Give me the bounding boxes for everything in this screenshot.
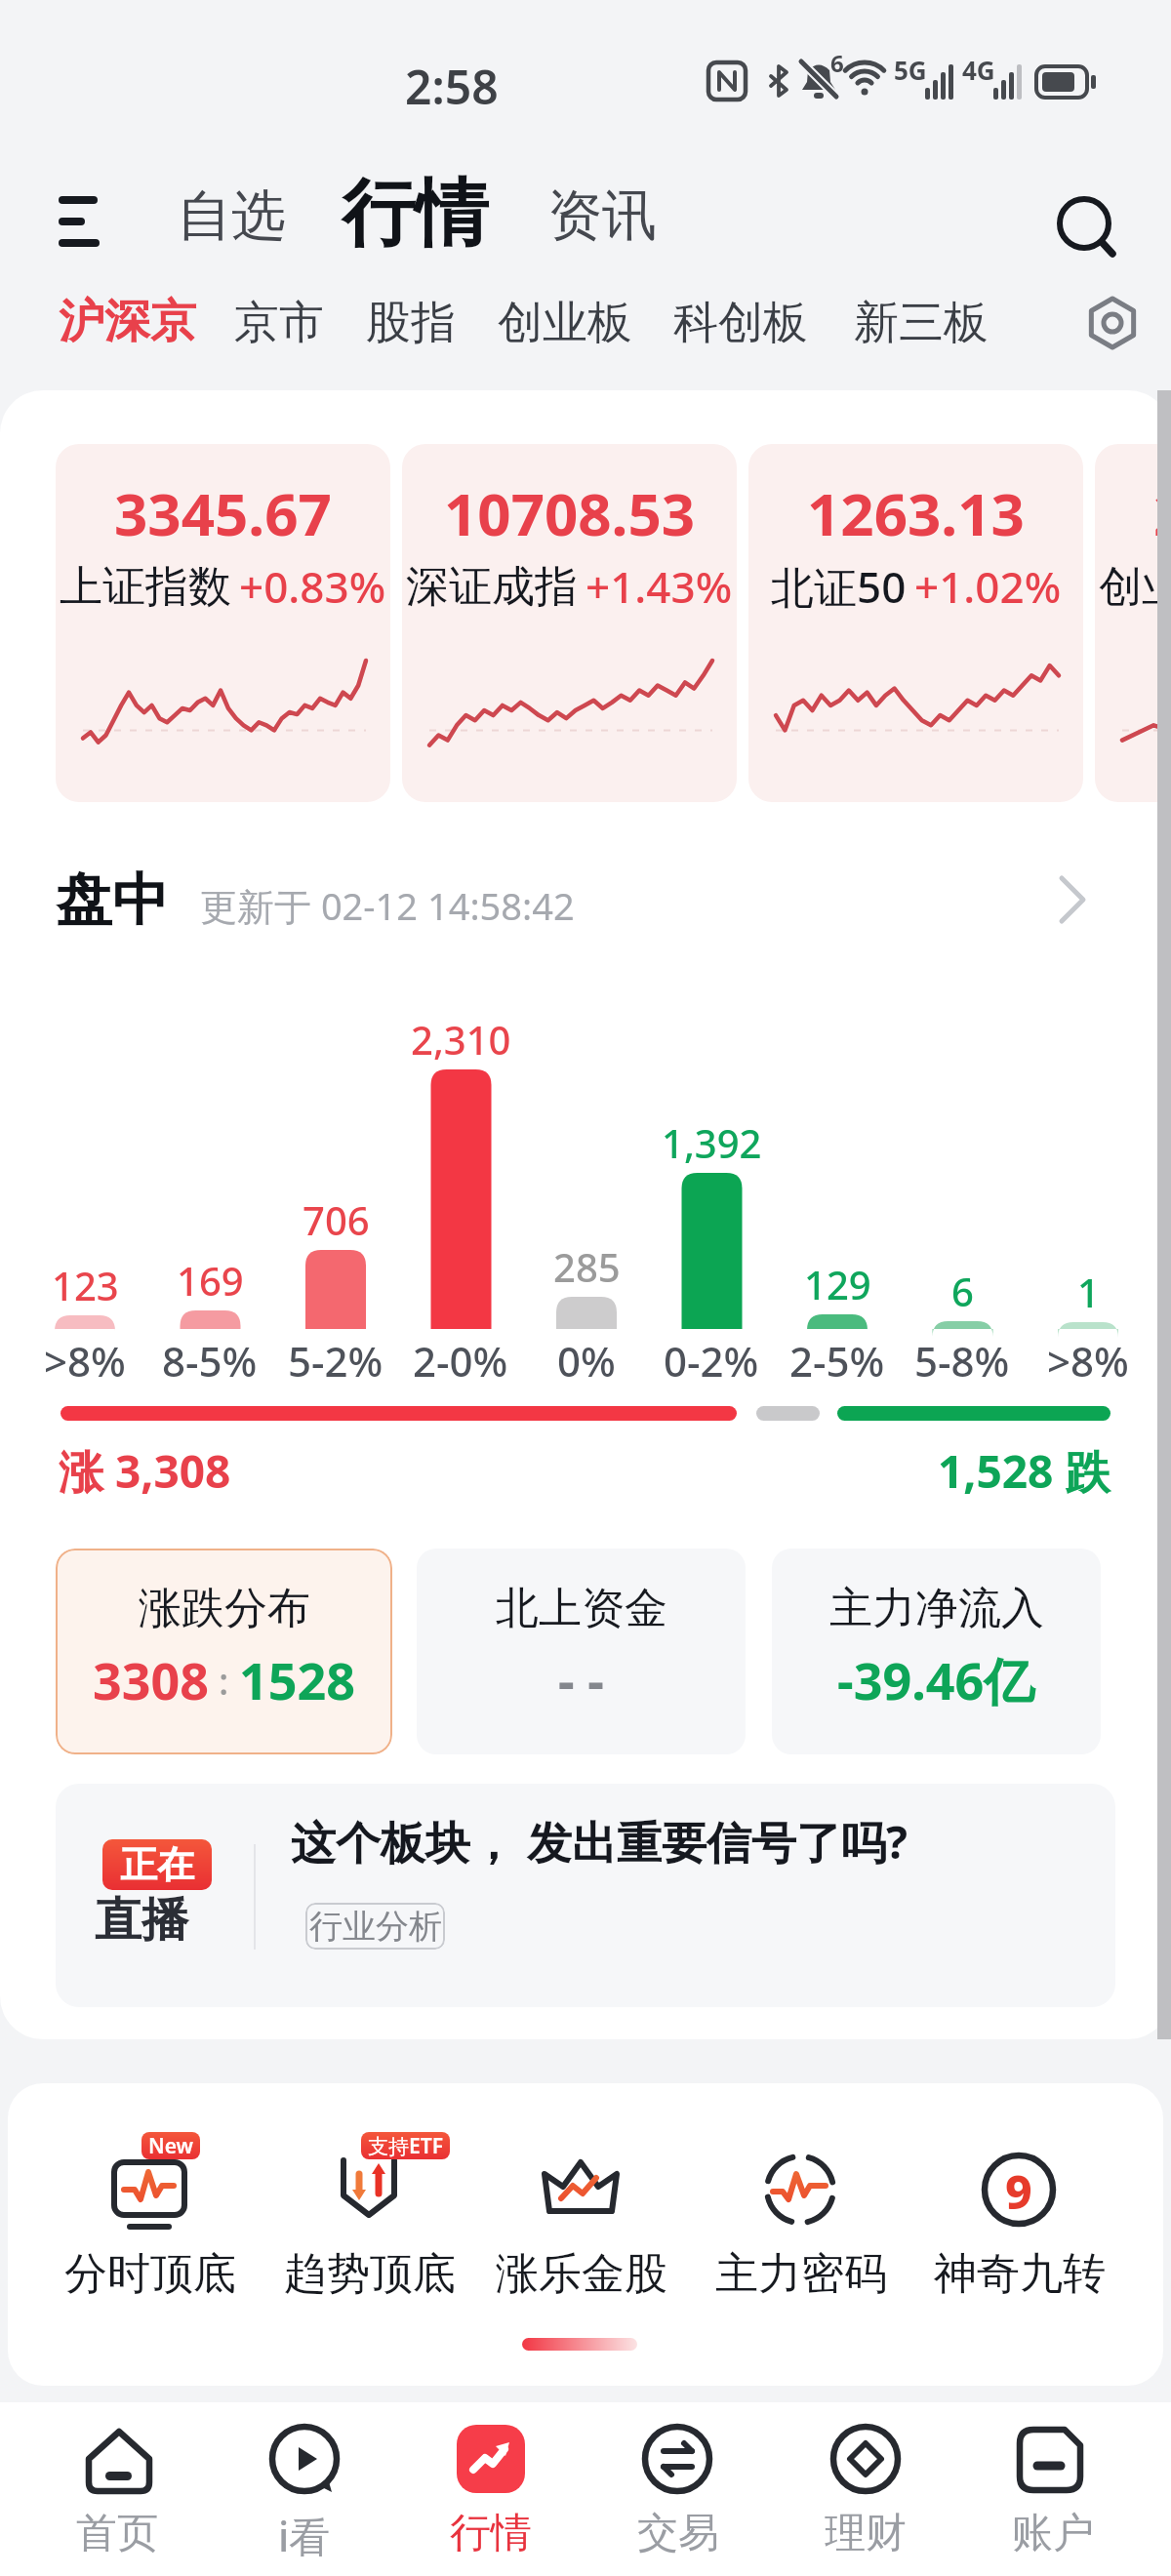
staticText: 深证成指 bbox=[406, 560, 578, 614]
staticText: 3308 bbox=[93, 1645, 209, 1714]
button[interactable]: 正在 bbox=[56, 1784, 1115, 2007]
staticText: 主力净流入 bbox=[829, 1582, 1044, 1635]
staticText: 自选 bbox=[177, 181, 286, 251]
staticText: 涨乐金股 bbox=[496, 2247, 667, 2301]
staticText: 0-2% bbox=[664, 1333, 759, 1389]
button[interactable]: 涨乐金股 bbox=[475, 2132, 687, 2376]
staticText: 神奇九转 bbox=[934, 2247, 1106, 2301]
staticText: 1,392 bbox=[662, 1116, 762, 1169]
staticText: 北证50 bbox=[771, 557, 907, 616]
staticText: : bbox=[209, 1655, 239, 1706]
button[interactable]: 3345.67 bbox=[56, 444, 390, 802]
button[interactable]: 主力净流入 bbox=[772, 1549, 1101, 1754]
staticText: 趋势顶底 bbox=[284, 2247, 456, 2301]
staticText: 行情 bbox=[342, 168, 488, 260]
staticText: 支持ETF bbox=[368, 2132, 443, 2159]
button[interactable]: 10708.53 bbox=[402, 444, 737, 802]
staticText: 首页 bbox=[76, 2508, 158, 2559]
staticText: 行情 bbox=[450, 2508, 532, 2559]
button[interactable] bbox=[1085, 296, 1140, 350]
staticText: 交易 bbox=[637, 2508, 719, 2559]
staticText: 4G bbox=[962, 53, 995, 87]
staticText: 直播 bbox=[95, 1891, 188, 1950]
staticText: 北上资金 bbox=[496, 1582, 667, 1635]
button[interactable]: New bbox=[44, 2132, 256, 2376]
staticText: 分时顶底 bbox=[64, 2247, 236, 2301]
staticText: 9 bbox=[1005, 2159, 1032, 2223]
staticText: 129 bbox=[804, 1258, 871, 1310]
staticText: i看 bbox=[278, 2508, 331, 2563]
staticText: 资讯 bbox=[547, 181, 657, 251]
button[interactable]: 首页 bbox=[44, 2402, 190, 2576]
staticText: 8-5% bbox=[162, 1333, 258, 1389]
staticText: 京市 bbox=[234, 295, 324, 351]
staticText: 1263.13 bbox=[807, 473, 1025, 553]
staticText: 5G bbox=[894, 53, 927, 87]
staticText: 盘中 bbox=[56, 865, 169, 936]
staticText: 2246.37 bbox=[1153, 473, 1171, 553]
staticText: 0% bbox=[557, 1333, 616, 1389]
staticText: >8% bbox=[1047, 1333, 1129, 1389]
staticText: New bbox=[148, 2132, 193, 2159]
button[interactable]: 神奇九转 bbox=[913, 2132, 1125, 2376]
staticText: 3345.67 bbox=[114, 473, 332, 553]
staticText: - - bbox=[558, 1645, 604, 1714]
staticText: 285 bbox=[553, 1240, 621, 1293]
staticText: 2-5% bbox=[789, 1333, 885, 1389]
staticText: 账户 bbox=[1012, 2508, 1094, 2559]
staticText: 6 bbox=[830, 47, 844, 79]
staticText: 科创板 bbox=[673, 295, 808, 351]
staticText: 创业板指 bbox=[1099, 560, 1171, 614]
staticText: 2-0% bbox=[413, 1333, 508, 1389]
staticText: 1,528 跌 bbox=[938, 1440, 1110, 1502]
staticText: 123 bbox=[52, 1259, 119, 1311]
staticText: 5-2% bbox=[288, 1333, 384, 1389]
staticText: 上证指数 bbox=[60, 560, 231, 614]
staticText: +0.83% bbox=[239, 557, 386, 616]
button[interactable]: 交易 bbox=[605, 2402, 751, 2576]
button[interactable]: 涨跌分布 bbox=[56, 1549, 392, 1754]
staticText: 6 bbox=[951, 1265, 974, 1317]
staticText: 更新于 02-12 14:58:42 bbox=[200, 880, 575, 931]
button[interactable]: 资讯 bbox=[547, 181, 657, 251]
button[interactable]: 北上资金 bbox=[417, 1549, 746, 1754]
staticText: 理财 bbox=[825, 2508, 907, 2559]
button[interactable] bbox=[59, 196, 105, 251]
staticText: 行业分析 bbox=[309, 1906, 442, 1948]
staticText: +1.43% bbox=[585, 557, 733, 616]
button[interactable]: 自选 bbox=[177, 181, 286, 251]
button[interactable] bbox=[1056, 195, 1120, 260]
button[interactable]: 2246.37 bbox=[1095, 444, 1171, 802]
button[interactable]: 盘中 bbox=[0, 859, 1171, 946]
staticText: 2:58 bbox=[405, 55, 499, 118]
staticText: 沪深京 bbox=[59, 293, 196, 350]
staticText: 这个板块， 发出重要信号了吗? bbox=[291, 1811, 908, 1872]
button[interactable]: 1263.13 bbox=[748, 444, 1083, 802]
button[interactable]: i看 bbox=[231, 2402, 378, 2576]
staticText: 创业板 bbox=[498, 295, 632, 351]
staticText: 涨 3,308 bbox=[59, 1440, 231, 1502]
staticText: 1 bbox=[1077, 1266, 1100, 1318]
staticText: 主力密码 bbox=[715, 2247, 887, 2301]
staticText: +1.02% bbox=[914, 557, 1062, 616]
staticText: 正在 bbox=[120, 1841, 194, 1888]
button[interactable]: 支持ETF bbox=[263, 2132, 475, 2376]
staticText: >8% bbox=[44, 1333, 126, 1389]
staticText: 1528 bbox=[239, 1645, 355, 1714]
staticText: 10708.53 bbox=[444, 473, 696, 553]
button[interactable]: 账户 bbox=[980, 2402, 1126, 2576]
staticText: 706 bbox=[303, 1193, 370, 1246]
staticText: 股指 bbox=[366, 295, 456, 351]
staticText: 新三板 bbox=[854, 295, 989, 351]
button[interactable]: 主力密码 bbox=[695, 2132, 907, 2376]
button[interactable]: 行情 bbox=[342, 168, 488, 260]
staticText: 5-8% bbox=[914, 1333, 1010, 1389]
staticText: 涨跌分布 bbox=[139, 1582, 310, 1635]
staticText: -39.46亿 bbox=[837, 1645, 1035, 1714]
button[interactable]: 行情 bbox=[418, 2402, 564, 2576]
button[interactable]: 理财 bbox=[792, 2402, 939, 2576]
staticText: 2,310 bbox=[411, 1013, 511, 1066]
staticText: 169 bbox=[177, 1254, 244, 1307]
